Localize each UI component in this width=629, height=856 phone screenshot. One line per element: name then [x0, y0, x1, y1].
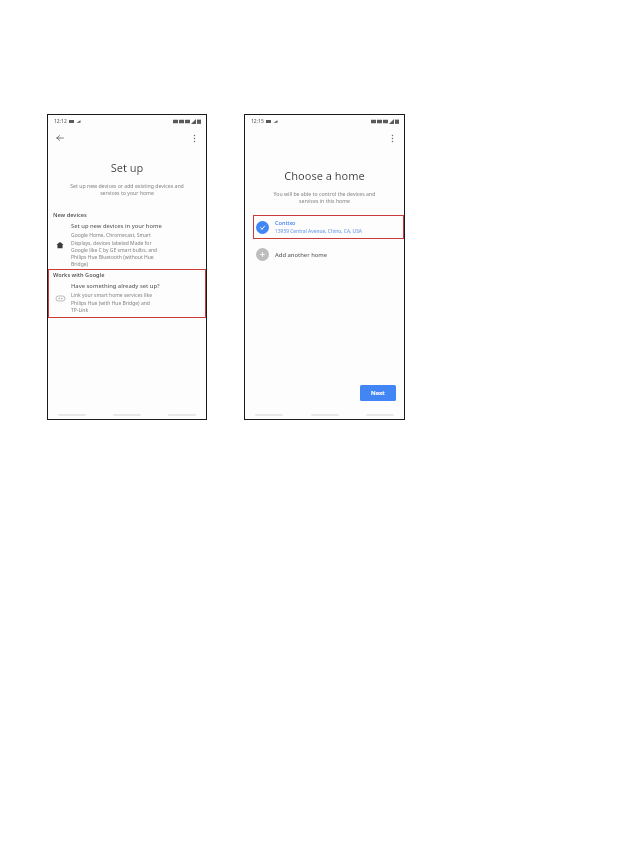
staticText: Link your smart home services like Phili… — [71, 292, 153, 313]
staticText: Works with Google — [53, 271, 105, 279]
button[interactable]: Have something already set up? — [48, 281, 206, 315]
staticText: Google Home, Chromecast, Smart Displays,… — [71, 232, 158, 267]
staticText: Set up new devices in your home — [71, 222, 162, 230]
staticText: 13959 Central Avenue, Chino, CA, USA — [275, 228, 362, 235]
button[interactable]: Contixo — [253, 215, 404, 239]
staticText: Choose a home — [245, 168, 404, 183]
staticText: 12:12 — [54, 118, 67, 125]
staticText: Have something already set up? — [71, 282, 160, 290]
staticText: Add another home — [275, 251, 328, 259]
staticText: Set up — [48, 160, 206, 175]
staticText: 12:15 — [251, 118, 264, 125]
button[interactable]: Back — [53, 131, 67, 145]
staticText: Set up new devices or add existing devic… — [52, 182, 202, 197]
staticText: New devices — [53, 211, 87, 219]
button[interactable]: Set up new devices in your home — [48, 221, 206, 269]
button[interactable]: More options — [187, 131, 201, 145]
button[interactable]: Next — [360, 385, 396, 401]
staticText: Contixo — [275, 219, 296, 227]
button[interactable]: More options — [385, 131, 399, 145]
staticText: You will be able to control the devices … — [249, 190, 400, 205]
button[interactable]: Add another home — [245, 245, 404, 264]
staticText: Next — [371, 389, 385, 397]
